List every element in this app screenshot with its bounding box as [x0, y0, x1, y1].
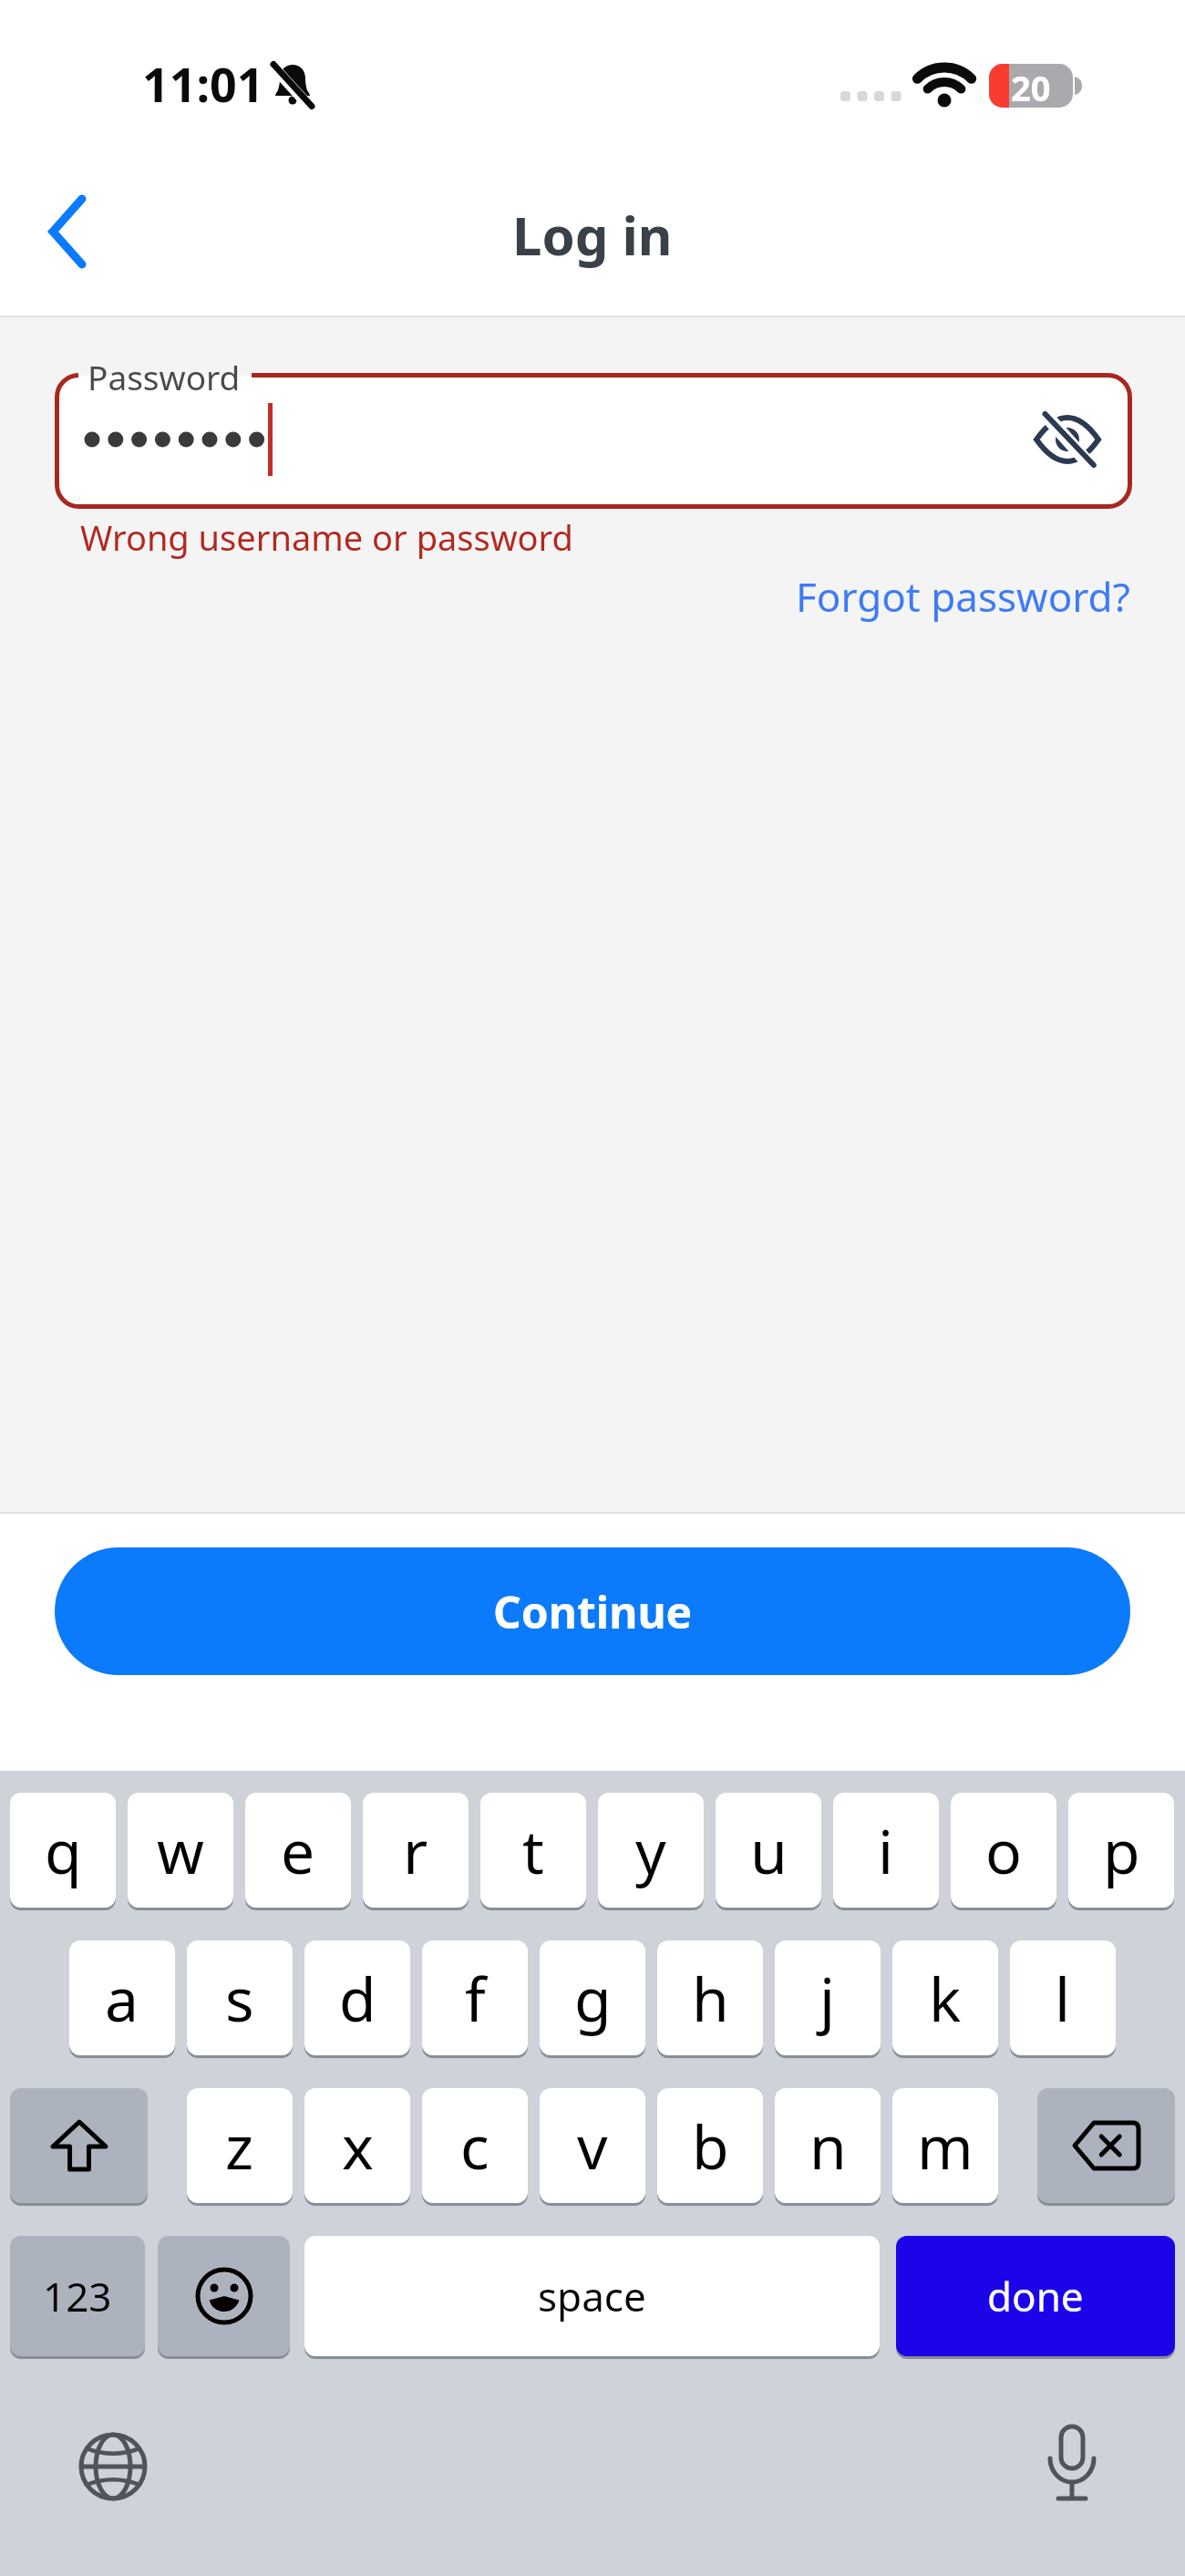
button[interactable] [158, 2236, 290, 2356]
staticText: l [1055, 1957, 1071, 2039]
button[interactable]: d [304, 1940, 410, 2055]
button[interactable]: t [480, 1793, 586, 1908]
staticText: w [157, 1809, 204, 1891]
staticText: y [635, 1809, 666, 1891]
button[interactable]: g [540, 1940, 645, 2055]
staticText: Continue [493, 1582, 693, 1641]
button[interactable] [1035, 416, 1100, 463]
staticText: b [692, 2105, 729, 2187]
staticText: done [987, 2269, 1084, 2323]
button[interactable]: n [775, 2088, 881, 2203]
staticText: k [929, 1957, 962, 2039]
button[interactable]: m [892, 2088, 998, 2203]
button[interactable]: i [833, 1793, 939, 1908]
staticText: d [339, 1957, 376, 2039]
button[interactable]: Forgot password? [796, 569, 1130, 624]
staticText: c [460, 2105, 489, 2187]
button[interactable] [31, 186, 104, 277]
staticText: x [342, 2105, 374, 2187]
button[interactable]: y [598, 1793, 704, 1908]
staticText: s [225, 1957, 254, 2039]
button[interactable]: j [775, 1940, 881, 2055]
staticText: v [577, 2105, 608, 2187]
button[interactable] [1037, 2088, 1175, 2203]
button[interactable]: q [10, 1793, 116, 1908]
button[interactable]: Continue [55, 1547, 1130, 1675]
button[interactable]: l [1010, 1940, 1116, 2055]
button[interactable]: c [422, 2088, 528, 2203]
staticText: f [465, 1957, 486, 2039]
staticText: 11:01 [142, 51, 264, 116]
staticText: Password [88, 354, 241, 399]
button[interactable]: done [896, 2236, 1175, 2356]
button[interactable] [1043, 2424, 1101, 2511]
staticText: a [105, 1957, 139, 2039]
button[interactable]: f [422, 1940, 528, 2055]
button[interactable]: p [1068, 1793, 1174, 1908]
button[interactable]: v [540, 2088, 645, 2203]
button[interactable]: r [363, 1793, 469, 1908]
button[interactable]: u [716, 1793, 821, 1908]
button[interactable]: h [657, 1940, 763, 2055]
button[interactable]: e [245, 1793, 351, 1908]
staticText: i [878, 1809, 894, 1891]
staticText: r [403, 1809, 428, 1891]
button[interactable]: k [892, 1940, 998, 2055]
staticText: 123 [43, 2269, 112, 2323]
staticText: u [750, 1809, 788, 1891]
staticText: t [522, 1809, 544, 1891]
staticText: g [574, 1957, 612, 2039]
staticText: q [45, 1809, 82, 1891]
button[interactable]: 123 [10, 2236, 145, 2356]
staticText: e [281, 1809, 315, 1891]
staticText: p [1103, 1809, 1140, 1891]
staticText: j [819, 1957, 836, 2039]
button[interactable]: o [951, 1793, 1056, 1908]
button[interactable]: space [304, 2236, 880, 2356]
staticText: Wrong username or password [80, 513, 573, 561]
button[interactable] [10, 2088, 148, 2203]
staticText: z [225, 2105, 254, 2187]
button[interactable]: a [69, 1940, 175, 2055]
staticText: Log in [512, 199, 673, 271]
button[interactable]: b [657, 2088, 763, 2203]
staticText: space [538, 2269, 646, 2323]
staticText: o [985, 1809, 1022, 1891]
staticText: n [809, 2105, 847, 2187]
staticText: 20 [1011, 64, 1051, 108]
button[interactable]: x [304, 2088, 410, 2203]
button[interactable]: w [128, 1793, 233, 1908]
staticText: m [917, 2105, 974, 2187]
button[interactable]: z [187, 2088, 293, 2203]
staticText: h [692, 1957, 729, 2039]
button[interactable] [57, 375, 1130, 507]
button[interactable] [78, 2432, 148, 2501]
button[interactable]: s [187, 1940, 293, 2055]
